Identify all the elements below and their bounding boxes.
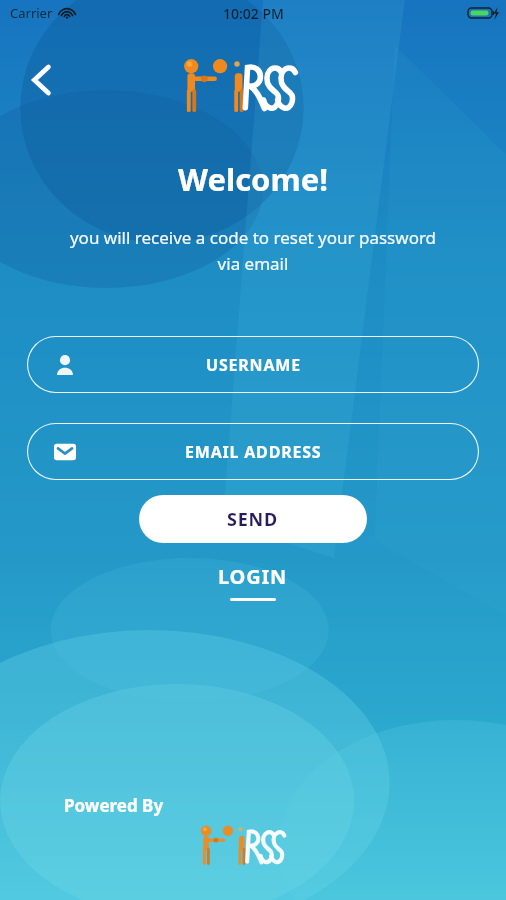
staticText: EMAIL ADDRESS xyxy=(185,441,322,463)
staticText: you will receive a code to reset your pa… xyxy=(14,226,492,275)
staticText: Carrier xyxy=(10,4,53,22)
staticText: Powered By xyxy=(64,794,164,817)
staticText: 10:02 PM xyxy=(223,4,284,23)
button[interactable]: USERNAME xyxy=(27,336,479,393)
button[interactable]: Back xyxy=(18,56,66,104)
staticText: Welcome! xyxy=(178,158,328,200)
button[interactable]: LOGIN xyxy=(196,560,310,604)
button[interactable]: SEND xyxy=(139,495,367,543)
button[interactable]: EMAIL ADDRESS xyxy=(27,423,479,480)
staticText: LOGIN xyxy=(218,563,288,590)
staticText: SEND xyxy=(227,507,279,532)
staticText: USERNAME xyxy=(206,354,301,376)
